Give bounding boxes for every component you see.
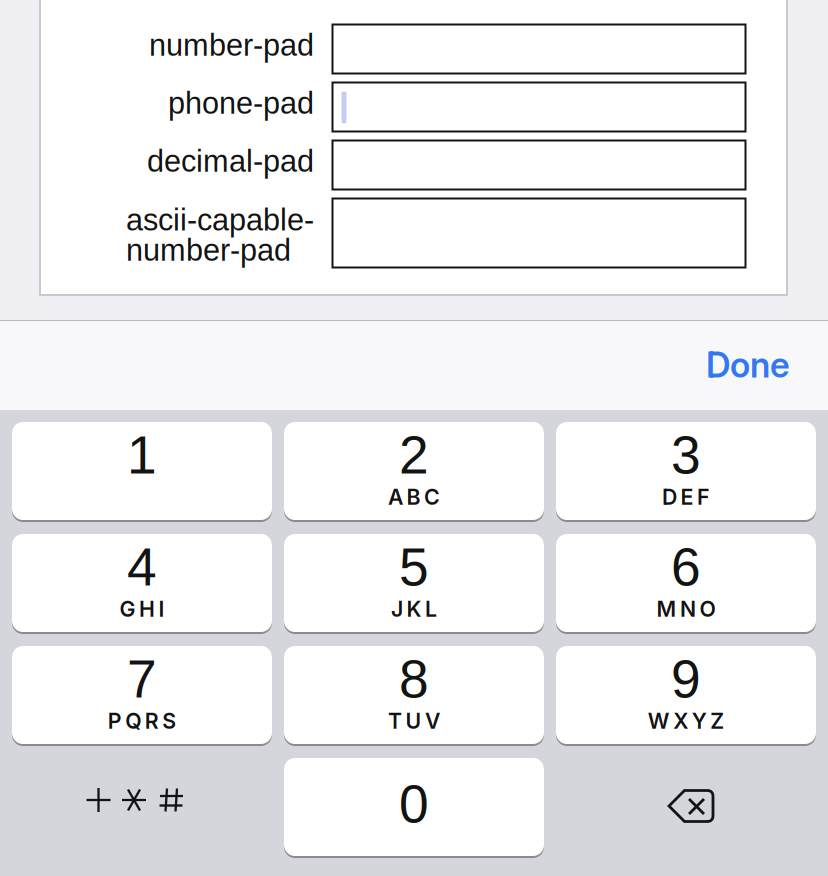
staticText: TUV: [388, 708, 440, 734]
button[interactable]: Plus, asterisk, hash: [12, 758, 272, 856]
staticText: 9: [671, 649, 701, 709]
button[interactable]: Delete: [556, 758, 816, 856]
staticText: JKL: [391, 596, 437, 622]
button[interactable]: number-pad: [332, 24, 745, 73]
staticText: 5: [399, 537, 429, 597]
staticText: WXYZ: [648, 708, 724, 734]
button[interactable]: 6: [556, 534, 816, 634]
staticText: decimal-pad: [147, 144, 314, 178]
staticText: 7: [127, 649, 157, 709]
button[interactable]: 1: [12, 422, 272, 522]
button[interactable]: 7: [12, 646, 272, 746]
staticText: MNO: [656, 596, 715, 622]
button[interactable]: phone-pad: [332, 82, 745, 131]
staticText: PQRS: [108, 708, 176, 734]
button[interactable]: 9: [556, 646, 816, 746]
staticText: 3: [671, 425, 701, 485]
staticText: phone-pad: [168, 86, 314, 120]
button[interactable]: 4: [12, 534, 272, 634]
staticText: 2: [399, 425, 429, 485]
staticText: DEF: [662, 484, 710, 510]
staticText: 6: [671, 537, 701, 597]
staticText: 0: [399, 774, 429, 834]
staticText: ABC: [388, 484, 440, 510]
staticText: 1: [127, 425, 157, 485]
button[interactable]: decimal-pad: [332, 140, 745, 189]
staticText: ascii-capable-number-pad: [126, 203, 314, 267]
staticText: number-pad: [149, 28, 314, 62]
staticText: 8: [399, 649, 429, 709]
button[interactable]: 8: [284, 646, 544, 746]
staticText: GHI: [119, 596, 164, 622]
staticText: 4: [127, 537, 157, 597]
button[interactable]: 3: [556, 422, 816, 522]
button[interactable]: 2: [284, 422, 544, 522]
button[interactable]: 0: [284, 758, 544, 858]
button[interactable]: Done: [590, 320, 790, 410]
button[interactable]: 5: [284, 534, 544, 634]
button[interactable]: ascii-capable-number-pad: [332, 198, 745, 267]
staticText: Done: [706, 344, 790, 386]
